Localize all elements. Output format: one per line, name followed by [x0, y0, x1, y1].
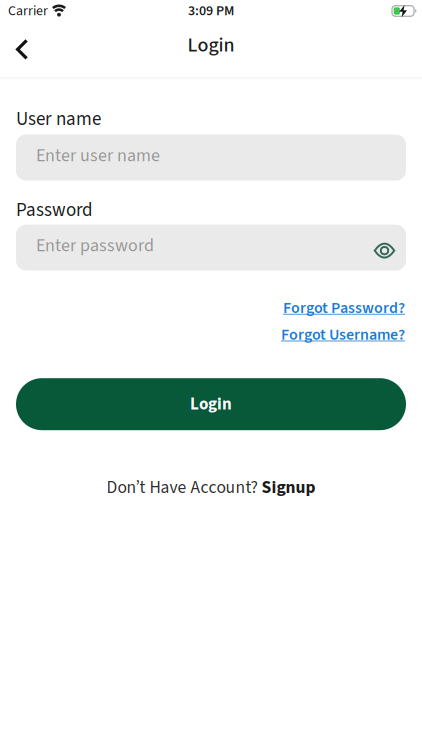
- staticText: Carrier: [8, 1, 48, 21]
- staticText: Login: [190, 392, 232, 416]
- button[interactable]: Forgot Password?: [283, 297, 405, 319]
- button[interactable]: Forgot Username?: [281, 323, 405, 346]
- staticText: Signup: [261, 475, 315, 500]
- staticText: 3:09 PM: [188, 1, 234, 21]
- button[interactable]: Login: [16, 378, 406, 430]
- staticText: Don’t Have Account?: [106, 475, 261, 500]
- staticText: Password: [16, 197, 93, 224]
- staticText: Login: [187, 31, 234, 59]
- button[interactable]: Enter user name: [16, 135, 406, 181]
- button[interactable]: Enter password: [16, 225, 406, 271]
- button[interactable]: Signup: [261, 475, 315, 500]
- staticText: Enter password: [36, 233, 154, 258]
- staticText: Enter user name: [36, 143, 160, 168]
- staticText: Forgot Password?: [283, 297, 405, 319]
- staticText: User name: [16, 105, 101, 133]
- staticText: Forgot Username?: [281, 323, 405, 346]
- button[interactable]: Back: [0, 31, 40, 68]
- button[interactable]: Show password: [374, 231, 406, 264]
